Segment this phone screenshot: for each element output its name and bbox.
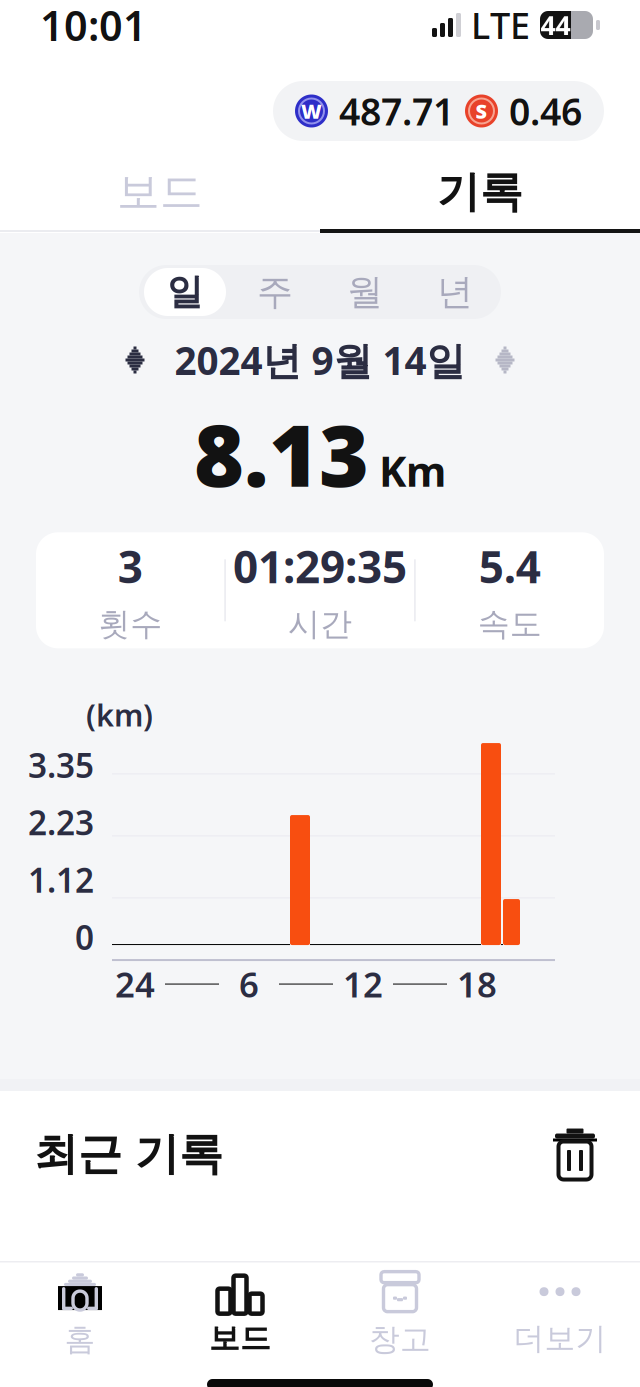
- button[interactable]: 보드: [160, 1262, 320, 1364]
- button[interactable]: 보드: [0, 155, 320, 229]
- staticText: 0.46: [509, 86, 582, 136]
- button[interactable]: Previous day: [106, 333, 160, 387]
- staticText: 2.23: [28, 800, 94, 844]
- staticText: 10:01: [40, 0, 147, 52]
- staticText: 487.71: [339, 86, 454, 136]
- staticText: 최근 기록: [34, 1127, 223, 1181]
- staticText: 년: [437, 270, 473, 314]
- staticText: (km): [86, 694, 153, 735]
- staticText: 더보기: [513, 1320, 606, 1357]
- staticText: 1.12: [28, 858, 94, 902]
- staticText: 0: [75, 915, 94, 959]
- staticText: 6: [239, 961, 259, 1007]
- button[interactable]: W: [273, 81, 604, 141]
- staticText: 시간: [288, 604, 352, 644]
- staticText: 3: [118, 537, 143, 595]
- staticText: Km: [379, 443, 446, 498]
- staticText: 8.13: [194, 397, 369, 510]
- staticText: 보드: [117, 166, 203, 218]
- staticText: 3.35: [28, 743, 94, 787]
- staticText: 2024년 9월 14일: [174, 334, 465, 386]
- staticText: 홈: [64, 1321, 95, 1358]
- staticText: S: [475, 98, 487, 124]
- staticText: 월: [347, 270, 383, 314]
- staticText: 횟수: [98, 604, 162, 644]
- button[interactable]: 기록: [320, 155, 640, 229]
- staticText: 01:29:35: [233, 537, 407, 595]
- staticText: LTE: [471, 1, 530, 49]
- staticText: 12: [343, 961, 383, 1007]
- button[interactable]: Delete records: [544, 1123, 606, 1185]
- button[interactable]: 홈: [0, 1262, 160, 1364]
- button[interactable]: 일: [140, 265, 230, 319]
- button[interactable]: Next day: [479, 333, 533, 387]
- staticText: 기록: [437, 166, 523, 218]
- staticText: 5.4: [479, 537, 541, 595]
- staticText: 24: [115, 961, 155, 1007]
- button[interactable]: 월: [320, 265, 410, 319]
- staticText: 일: [167, 270, 203, 314]
- button[interactable]: 년: [410, 265, 500, 319]
- staticText: W: [301, 98, 322, 124]
- button[interactable]: 더보기: [480, 1262, 640, 1364]
- staticText: 속도: [478, 604, 542, 644]
- staticText: 주: [257, 270, 293, 314]
- staticText: 44: [540, 7, 570, 43]
- staticText: 18: [457, 961, 497, 1007]
- staticText: 창고: [369, 1321, 431, 1358]
- button[interactable]: 창고: [320, 1262, 480, 1364]
- button[interactable]: 주: [230, 265, 320, 319]
- staticText: 보드: [209, 1320, 271, 1357]
